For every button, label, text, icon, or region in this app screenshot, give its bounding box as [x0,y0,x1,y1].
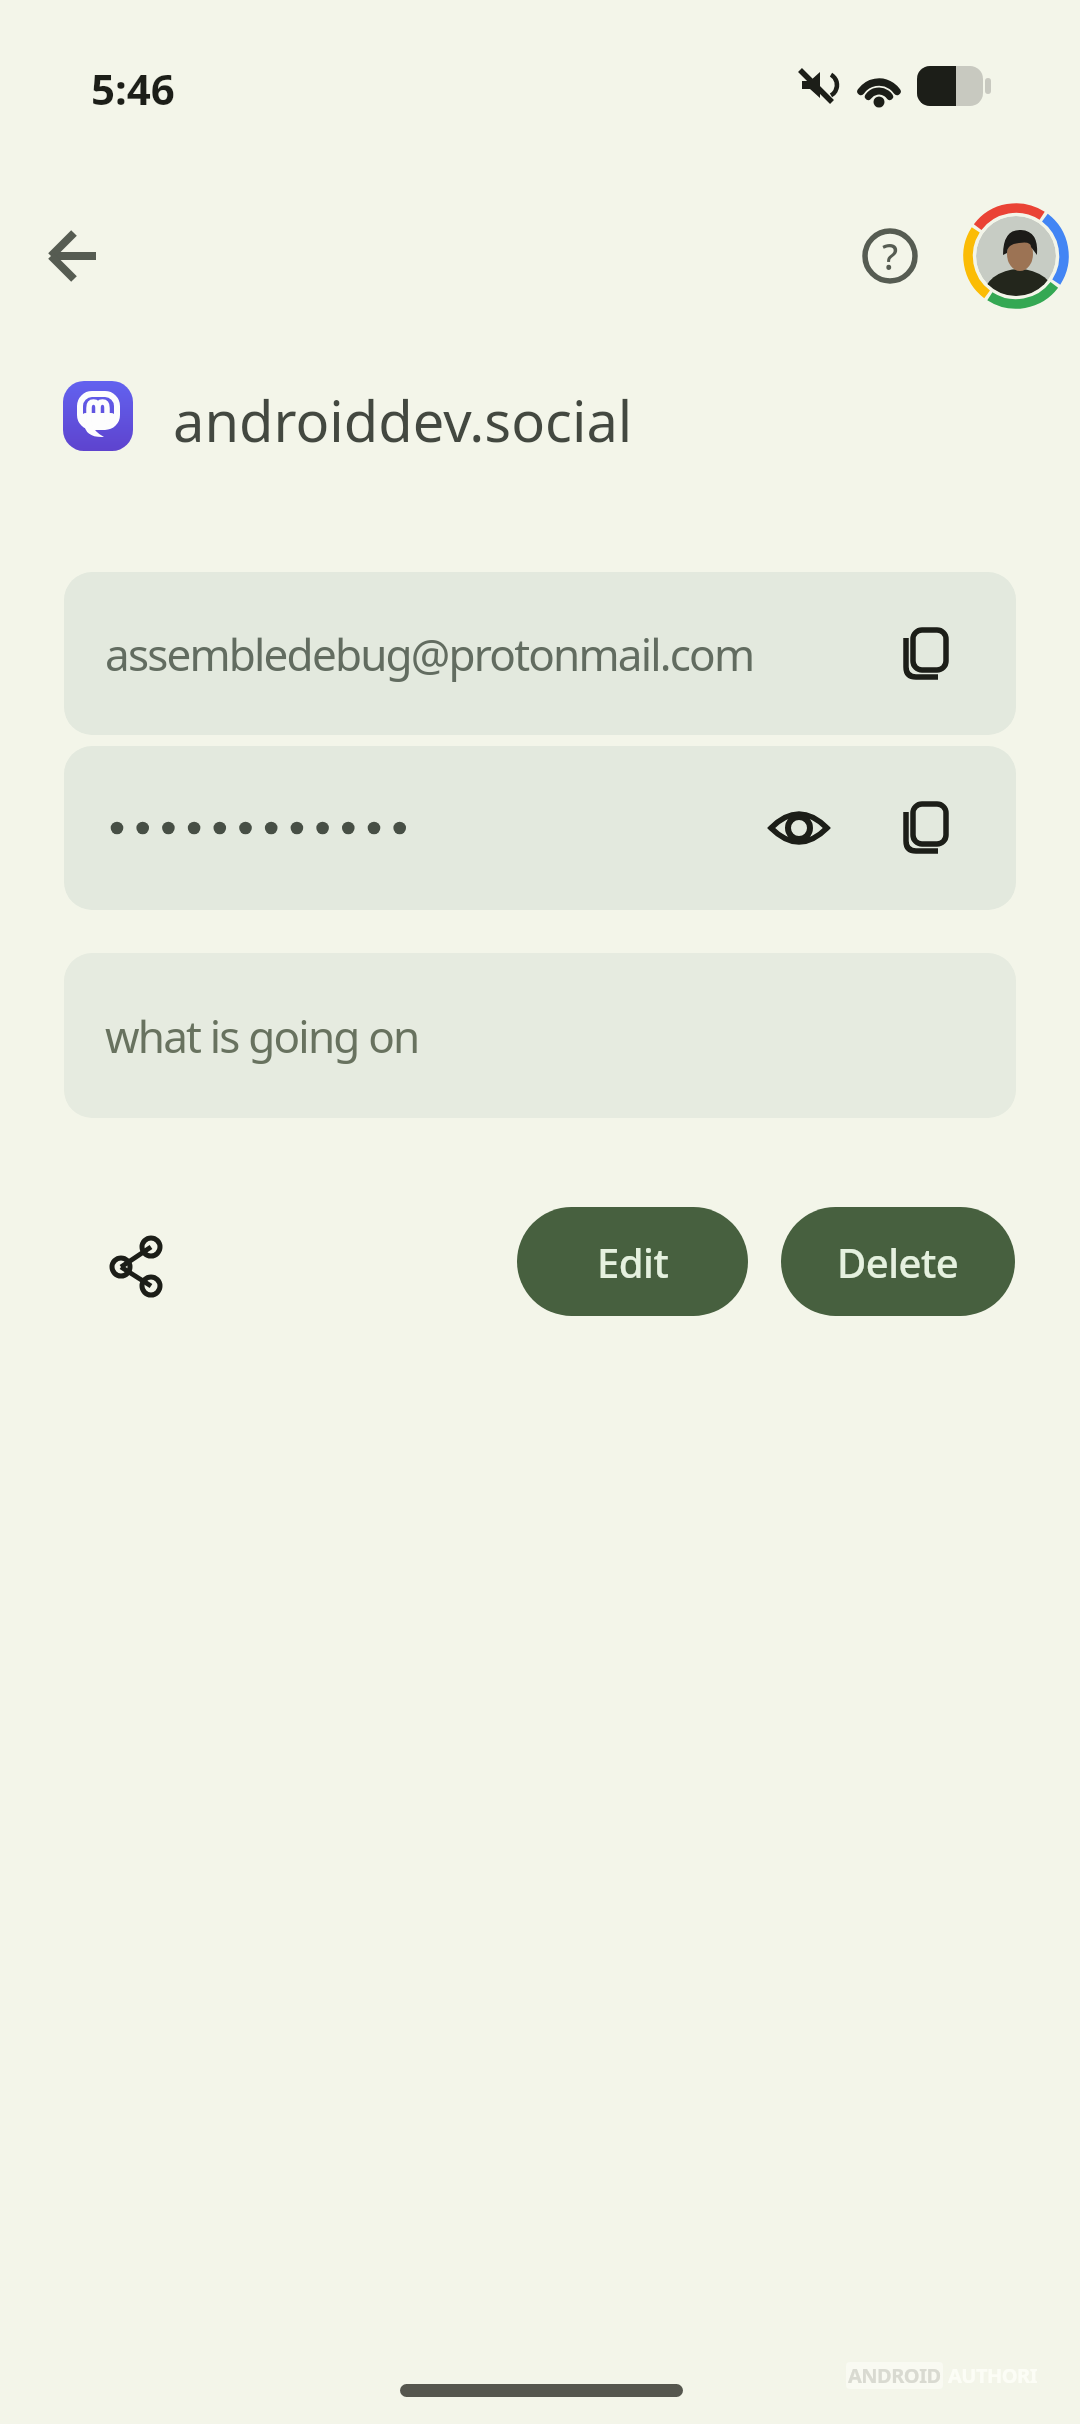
button[interactable] [38,220,110,292]
button[interactable]: what is going on [64,953,1016,1118]
staticText: assembledebug@protonmail.com [105,624,754,684]
button[interactable]: ? [860,226,920,286]
button[interactable]: Edit [517,1207,748,1316]
staticText: AUTHORITY [948,2362,1046,2389]
staticText: androiddev.social [173,382,633,458]
staticText: 5:46 [91,60,175,117]
staticText: Edit [597,1235,669,1289]
button[interactable]: assembledebug@protonmail.com [64,572,1016,735]
button[interactable]: Delete [781,1207,1015,1316]
staticText: ? [882,232,899,281]
button[interactable] [770,799,828,857]
button[interactable] [963,203,1069,309]
button[interactable] [900,802,952,854]
button[interactable] [100,1232,168,1300]
button[interactable] [64,746,1016,910]
staticText: what is going on [105,1006,419,1066]
staticText: Delete [837,1235,959,1289]
button[interactable] [900,628,952,680]
staticText: ANDROID [848,2362,941,2389]
